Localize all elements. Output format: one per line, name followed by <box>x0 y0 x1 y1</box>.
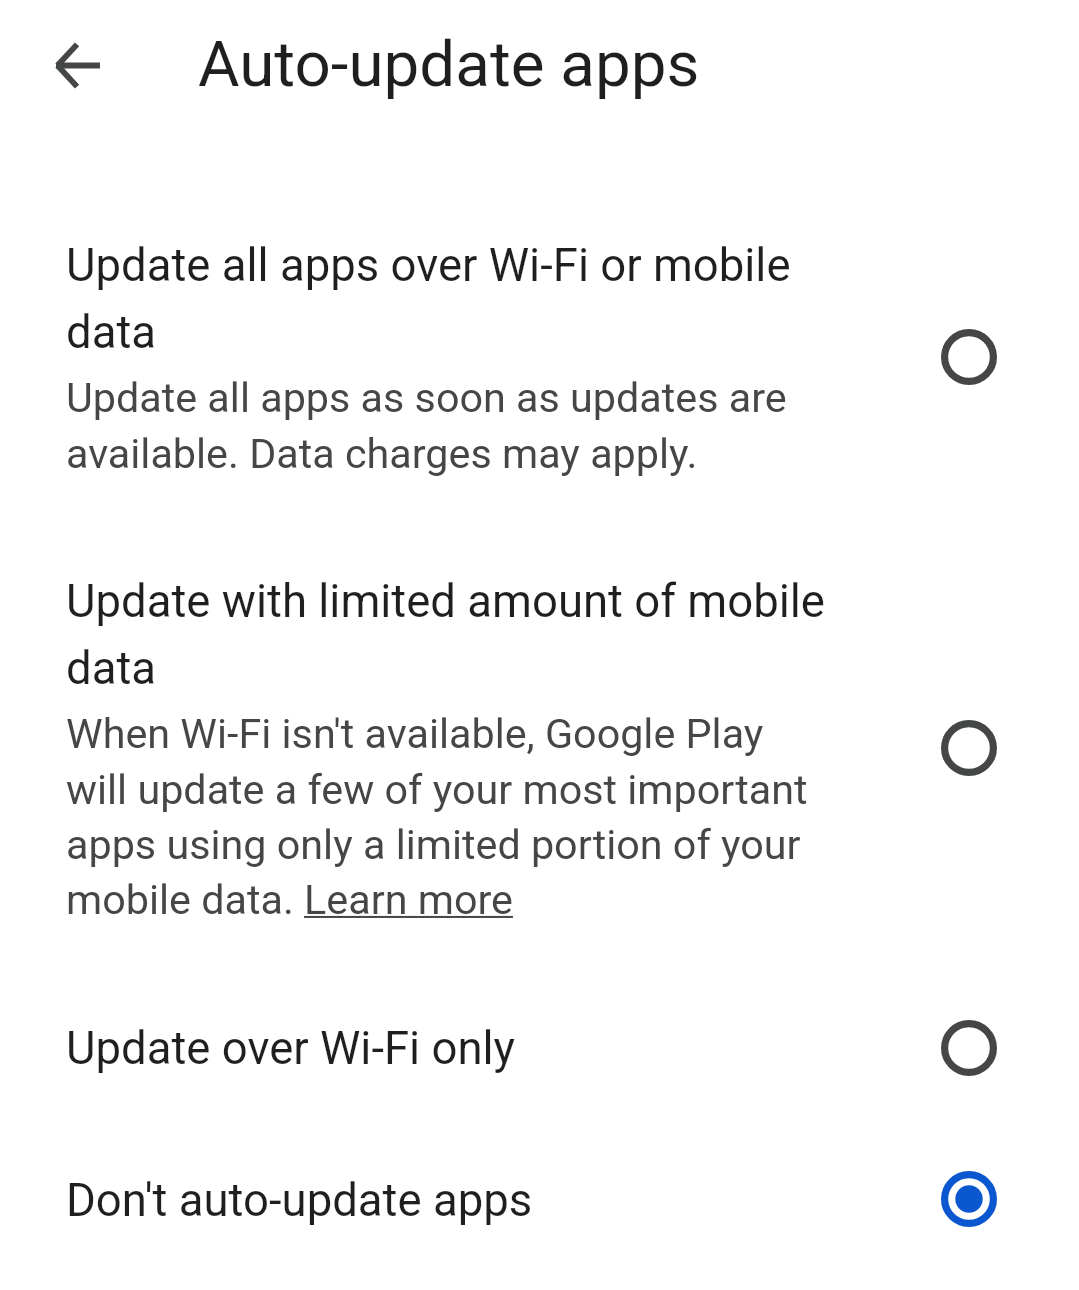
staticText: Update all apps over Wi-Fi or mobile dat… <box>66 239 830 359</box>
button[interactable]: Update all apps over Wi-Fi or mobile dat… <box>917 305 1021 409</box>
button[interactable]: Update with limited amount of mobile dat… <box>0 575 1079 924</box>
button[interactable]: Navigate up <box>31 19 123 111</box>
staticText: Update over Wi-Fi only <box>66 1022 516 1075</box>
button[interactable]: Update with limited amount of mobile dat… <box>917 696 1021 800</box>
staticText: Auto-update apps <box>198 27 700 102</box>
staticText: When Wi-Fi isn't available, Google Play … <box>66 710 830 924</box>
button[interactable]: Don't auto-update apps, selected <box>917 1147 1021 1251</box>
staticText: Update with limited amount of mobile dat… <box>66 575 830 695</box>
button[interactable]: Update over Wi-Fi only <box>0 996 1079 1100</box>
staticText: Update all apps as soon as updates are a… <box>66 374 830 478</box>
button[interactable]: Don't auto-update apps <box>0 1147 1079 1251</box>
button[interactable]: Update over Wi-Fi only <box>917 996 1021 1100</box>
staticText: Don't auto-update apps <box>66 1174 533 1227</box>
button[interactable]: Update all apps over Wi-Fi or mobile dat… <box>0 239 1079 478</box>
